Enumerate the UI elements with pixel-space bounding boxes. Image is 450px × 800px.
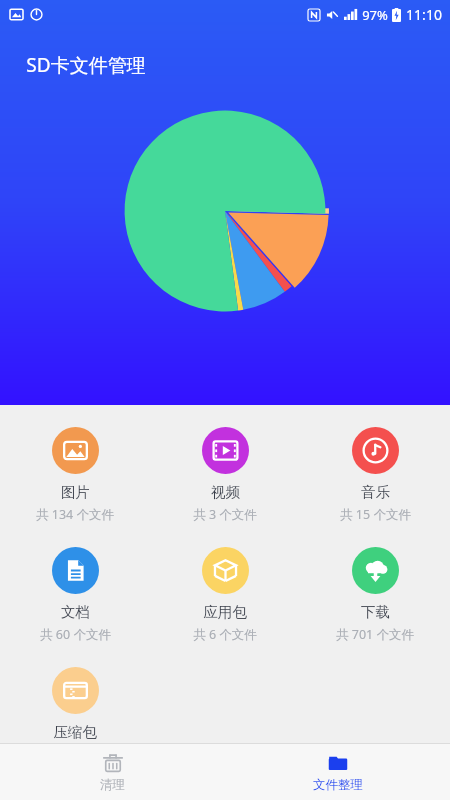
button[interactable]: 压缩包 <box>37 665 113 743</box>
staticText: 文档 <box>61 603 90 621</box>
staticText: 共 15 个文件 <box>340 506 411 523</box>
staticText: 共 6 个文件 <box>193 626 257 643</box>
button[interactable]: 图片 <box>30 425 120 525</box>
staticText: 音乐 <box>361 483 390 501</box>
button[interactable]: 视频 <box>187 425 263 525</box>
staticText: 共 60 个文件 <box>40 626 111 643</box>
staticText: 应用包 <box>203 603 247 621</box>
staticText: 11:10 <box>406 5 442 24</box>
button[interactable]: 文件整理 <box>225 744 450 800</box>
staticText: 压缩包 <box>53 723 97 741</box>
staticText: 共 134 个文件 <box>36 506 114 523</box>
staticText: 图片 <box>61 483 90 501</box>
button[interactable]: 应用包 <box>187 545 263 645</box>
staticText: 视频 <box>211 483 240 501</box>
button[interactable]: 音乐 <box>334 425 417 525</box>
staticText: 下载 <box>361 603 390 621</box>
staticText: 共 701 个文件 <box>336 626 414 643</box>
staticText: SD卡文件管理 <box>26 52 146 78</box>
staticText: 清理 <box>100 777 125 793</box>
staticText: 97% <box>362 6 388 24</box>
button[interactable]: 下载 <box>330 545 420 645</box>
button[interactable]: 清理 <box>0 744 225 800</box>
button[interactable]: 文档 <box>34 545 117 645</box>
staticText: 文件整理 <box>313 777 363 793</box>
staticText: 共 3 个文件 <box>193 506 257 523</box>
